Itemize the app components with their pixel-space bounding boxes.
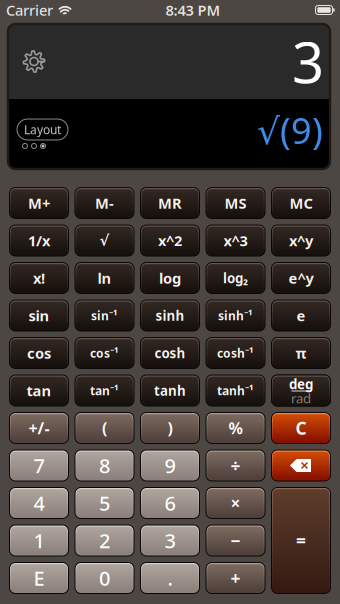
staticText: √ xyxy=(99,232,109,249)
button[interactable]: Settings xyxy=(19,46,49,76)
button[interactable]: 1/x xyxy=(9,224,69,256)
button[interactable]: x^y xyxy=(271,224,331,256)
staticText: rad xyxy=(291,389,311,407)
button[interactable]: ln xyxy=(74,262,134,294)
staticText: 4 xyxy=(33,490,44,516)
button[interactable]: 8 xyxy=(74,449,134,481)
staticText: M- xyxy=(95,193,114,213)
button[interactable]: Layout xyxy=(17,119,68,140)
staticText: E xyxy=(33,565,44,591)
staticText: ( xyxy=(102,417,107,439)
button[interactable]: cos xyxy=(9,337,69,369)
staticText: sinh xyxy=(155,307,184,324)
button[interactable]: sinh⁻¹ xyxy=(205,299,265,331)
button[interactable]: % xyxy=(205,412,265,444)
button[interactable]: 3 xyxy=(140,524,200,556)
staticText: cosh⁻¹ xyxy=(217,345,254,361)
button[interactable]: x^2 xyxy=(140,224,200,256)
button[interactable]: M- xyxy=(74,187,134,219)
button[interactable]: π xyxy=(271,337,331,369)
staticText: . xyxy=(167,565,172,591)
staticText: M+ xyxy=(28,193,50,213)
staticText: sin xyxy=(28,306,49,325)
staticText: π xyxy=(295,343,306,363)
button[interactable]: ( xyxy=(74,412,134,444)
button[interactable]: cos⁻¹ xyxy=(74,337,134,369)
staticText: 1 xyxy=(33,527,44,554)
button[interactable]: MR xyxy=(140,187,200,219)
button[interactable]: 1 xyxy=(9,524,69,556)
button[interactable]: e xyxy=(271,299,331,331)
staticText: sin⁻¹ xyxy=(91,307,118,323)
staticText: ) xyxy=(167,417,172,439)
button[interactable] xyxy=(271,374,331,406)
button[interactable]: tanh⁻¹ xyxy=(205,374,265,406)
staticText: log₂ xyxy=(223,269,248,287)
staticText: 6 xyxy=(164,490,175,516)
button[interactable]: 2 xyxy=(74,524,134,556)
button[interactable]: MS xyxy=(205,187,265,219)
button[interactable]: E xyxy=(9,562,69,594)
button[interactable]: 6 xyxy=(140,487,200,519)
staticText: √(9) xyxy=(257,106,323,154)
button[interactable]: tan⁻¹ xyxy=(74,374,134,406)
staticText: × xyxy=(230,491,240,514)
button[interactable]: log xyxy=(140,262,200,294)
staticText: ln xyxy=(97,268,111,288)
staticText: = xyxy=(296,529,306,552)
button[interactable]: √ xyxy=(74,224,134,256)
button[interactable]: sinh xyxy=(140,299,200,331)
staticText: x^2 xyxy=(158,231,182,250)
button[interactable]: 7 xyxy=(9,449,69,481)
staticText: − xyxy=(230,529,240,552)
button[interactable]: ÷ xyxy=(205,449,265,481)
button[interactable]: − xyxy=(205,524,265,556)
button[interactable]: + xyxy=(205,562,265,594)
staticText: 1/x xyxy=(28,231,50,250)
button[interactable]: cosh⁻¹ xyxy=(205,337,265,369)
staticText: e^y xyxy=(288,268,313,288)
button[interactable]: cosh xyxy=(140,337,200,369)
staticText: MC xyxy=(289,193,312,213)
button[interactable]: tan xyxy=(9,374,69,406)
button[interactable]: deg xyxy=(271,374,331,406)
staticText: 5 xyxy=(99,490,110,516)
staticText: 8 xyxy=(99,452,110,479)
button[interactable]: 5 xyxy=(74,487,134,519)
staticText: 8:43 PM xyxy=(165,0,220,20)
button[interactable]: ) xyxy=(140,412,200,444)
button[interactable]: 4 xyxy=(9,487,69,519)
staticText: % xyxy=(228,417,242,439)
staticText: Carrier xyxy=(6,0,53,20)
button[interactable]: × xyxy=(205,487,265,519)
staticText: 0 xyxy=(99,565,110,591)
button[interactable]: C xyxy=(271,412,331,444)
staticText: cos⁻¹ xyxy=(90,345,119,361)
button[interactable]: sin⁻¹ xyxy=(74,299,134,331)
button[interactable]: = xyxy=(271,487,331,594)
staticText: MS xyxy=(224,193,246,213)
button[interactable]: M+ xyxy=(9,187,69,219)
staticText: deg xyxy=(289,375,313,393)
button[interactable]: +/- xyxy=(9,412,69,444)
button[interactable]: MC xyxy=(271,187,331,219)
staticText: 3 xyxy=(164,527,175,554)
button[interactable]: sin xyxy=(9,299,69,331)
button[interactable]: tanh xyxy=(140,374,200,406)
button[interactable]: x! xyxy=(9,262,69,294)
staticText: cosh xyxy=(154,344,185,362)
button[interactable]: 9 xyxy=(140,449,200,481)
staticText: +/- xyxy=(28,417,49,439)
button[interactable]: log₂ xyxy=(205,262,265,294)
button[interactable]: . xyxy=(140,562,200,594)
button[interactable]: x^3 xyxy=(205,224,265,256)
button[interactable]: 0 xyxy=(74,562,134,594)
staticText: x! xyxy=(33,268,45,288)
staticText: + xyxy=(230,566,240,589)
staticText: 3 xyxy=(292,24,324,99)
staticText: 9 xyxy=(164,452,175,479)
staticText: log xyxy=(159,268,181,288)
button[interactable]: e^y xyxy=(271,262,331,294)
staticText: 2 xyxy=(99,527,110,554)
button[interactable]: Backspace xyxy=(271,449,331,481)
